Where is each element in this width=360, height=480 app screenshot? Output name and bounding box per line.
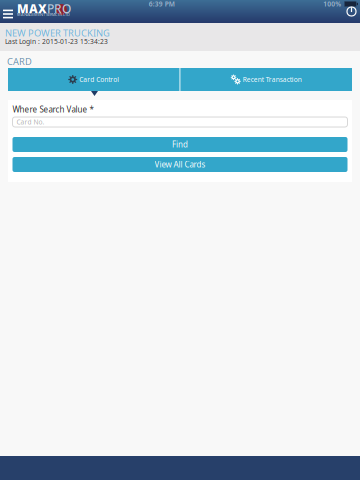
staticText: 6:39 PM xyxy=(149,0,175,8)
staticText: View All Cards xyxy=(154,159,205,170)
staticText: MANAGEMENT SERVICES LTD xyxy=(17,12,70,17)
staticText: Find xyxy=(172,139,188,150)
button[interactable]: Menu xyxy=(0,5,16,23)
button[interactable]: Log out xyxy=(344,5,359,18)
staticText: Last Login : 2015-01-23 15:34:23 xyxy=(5,37,108,46)
staticText: Recent Transaction xyxy=(243,75,302,84)
staticText: NEW POWER TRUCKING xyxy=(5,27,110,39)
button[interactable]: Recent Transaction xyxy=(180,68,352,91)
staticText: Card Control xyxy=(79,75,119,84)
button[interactable]: View All Cards xyxy=(12,157,347,172)
staticText: Where Search Value * xyxy=(12,104,93,115)
button[interactable]: Find xyxy=(12,137,347,152)
staticText: CARD xyxy=(7,55,32,68)
staticText: MAX xyxy=(17,0,47,16)
button[interactable]: Card Control xyxy=(8,68,179,91)
staticText: 100% xyxy=(323,0,341,8)
staticText: PRO xyxy=(47,0,71,16)
staticText: Card No. xyxy=(16,118,44,126)
